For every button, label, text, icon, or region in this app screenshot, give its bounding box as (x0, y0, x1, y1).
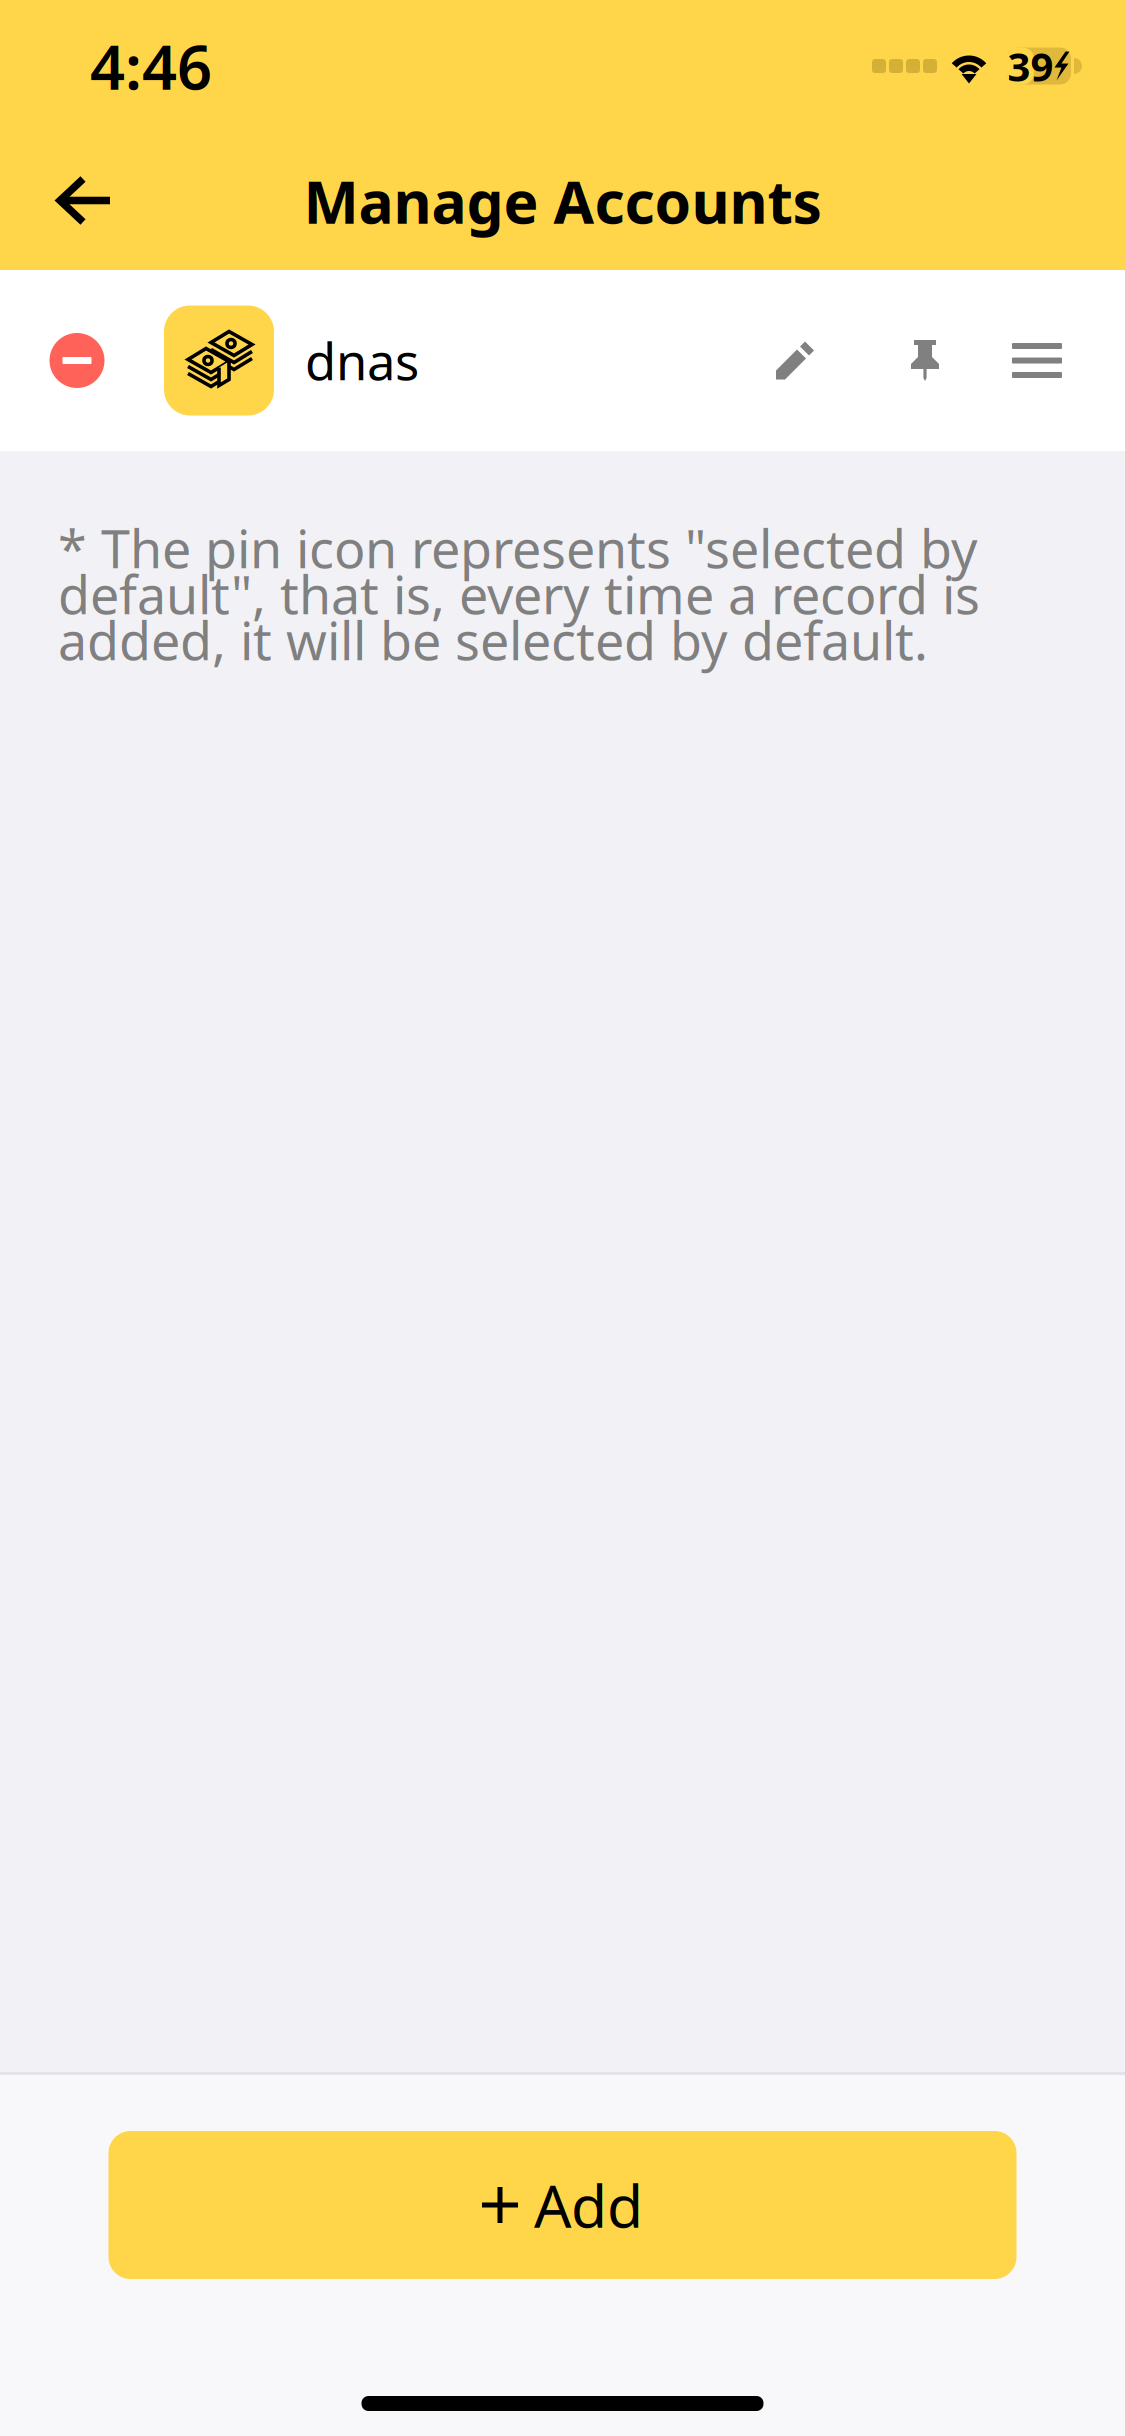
staticText: 4:46 (90, 25, 212, 107)
button[interactable]: Reorder (981, 304, 1093, 416)
button[interactable]: Add (108, 2131, 1016, 2279)
button[interactable]: Pin as default (869, 304, 981, 416)
staticText: dnas (305, 327, 419, 394)
button[interactable]: Delete account (22, 305, 132, 415)
staticText: Add (534, 2166, 643, 2244)
staticText: Manage Accounts (303, 162, 821, 240)
staticText: * The pin icon represents "selected by (58, 513, 978, 583)
button[interactable]: Edit (721, 304, 869, 416)
staticText: added, it will be selected by default. (58, 605, 928, 675)
button[interactable]: Back (30, 146, 140, 256)
staticText: default", that is, every time a record i… (58, 559, 980, 629)
staticText: 39 (1007, 39, 1053, 92)
